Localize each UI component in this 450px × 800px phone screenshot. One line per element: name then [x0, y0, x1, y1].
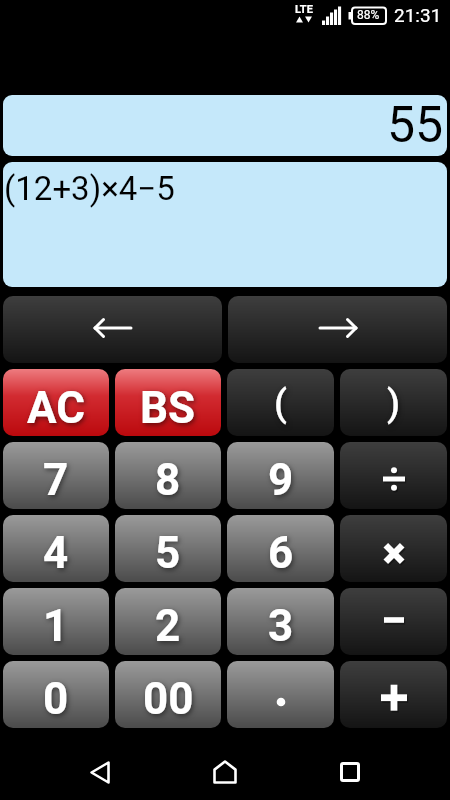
- button[interactable]: 8: [115, 442, 221, 509]
- button[interactable]: 9: [227, 442, 334, 509]
- button[interactable]: [340, 661, 447, 728]
- staticText: AC: [27, 382, 85, 434]
- staticText: BS: [140, 382, 196, 434]
- staticText: 1: [43, 600, 69, 652]
- button[interactable]: AC: [3, 369, 109, 436]
- button[interactable]: [330, 752, 370, 792]
- staticText: LTE: [295, 3, 313, 16]
- button[interactable]: [3, 296, 222, 363]
- button[interactable]: 3: [227, 588, 334, 655]
- button[interactable]: ): [340, 369, 447, 436]
- button[interactable]: [228, 296, 447, 363]
- staticText: 88%: [357, 8, 380, 22]
- button[interactable]: 1: [3, 588, 109, 655]
- button[interactable]: 6: [227, 515, 334, 582]
- button[interactable]: 00: [115, 661, 221, 728]
- staticText: 3: [268, 600, 294, 652]
- button[interactable]: 5: [115, 515, 221, 582]
- button[interactable]: [205, 752, 245, 792]
- staticText: 4: [43, 527, 69, 579]
- staticText: 00: [143, 673, 194, 725]
- staticText: 9: [268, 454, 294, 506]
- staticText: 5: [155, 527, 181, 579]
- button[interactable]: 0: [3, 661, 109, 728]
- staticText: (: [274, 382, 287, 425]
- button[interactable]: 4: [3, 515, 109, 582]
- button[interactable]: 7: [3, 442, 109, 509]
- button[interactable]: [340, 588, 447, 655]
- staticText: 6: [268, 527, 294, 579]
- staticText: 8: [155, 454, 181, 506]
- staticText: 0: [43, 673, 69, 725]
- staticText: 2: [155, 600, 181, 652]
- staticText: 21:31: [394, 4, 442, 26]
- button[interactable]: (: [227, 369, 334, 436]
- staticText: (12+3)×4−5: [4, 169, 175, 208]
- staticText: ): [387, 382, 401, 425]
- staticText: 7: [43, 454, 69, 506]
- button[interactable]: [340, 442, 447, 509]
- staticText: 55: [387, 96, 444, 155]
- button[interactable]: 2: [115, 588, 221, 655]
- button[interactable]: [80, 752, 120, 792]
- button[interactable]: [340, 515, 447, 582]
- button[interactable]: [227, 661, 334, 728]
- button[interactable]: BS: [115, 369, 221, 436]
